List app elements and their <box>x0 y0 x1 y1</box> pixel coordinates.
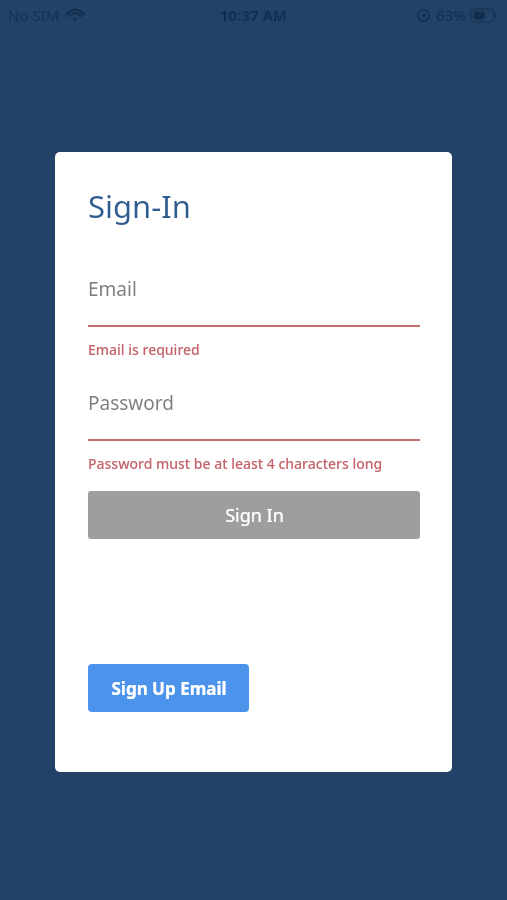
staticText: Email is required <box>88 340 200 359</box>
staticText: 63% <box>436 5 466 25</box>
staticText: Sign In <box>225 503 284 528</box>
staticText: Sign-In <box>88 185 191 227</box>
button[interactable]: Password <box>88 390 420 416</box>
button[interactable]: Email <box>88 276 420 302</box>
staticText: Email <box>88 276 137 302</box>
button[interactable]: Sign Up Email <box>88 664 249 712</box>
staticText: Password must be at least 4 characters l… <box>88 454 383 473</box>
staticText: Password <box>88 390 174 416</box>
button[interactable]: Sign In <box>88 491 420 539</box>
staticText: No SIM <box>8 5 60 25</box>
staticText: 10:37 AM <box>220 5 287 25</box>
staticText: Sign Up Email <box>111 677 227 700</box>
